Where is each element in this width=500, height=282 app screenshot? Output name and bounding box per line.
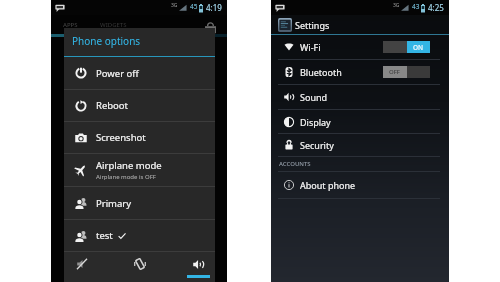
staticText: Wi-Fi [300, 41, 321, 53]
staticText: Reboot [96, 99, 129, 112]
staticText: Sound [300, 91, 328, 103]
button[interactable]: Security [271, 134, 449, 156]
staticText: Display [300, 116, 331, 128]
button[interactable]: Silent mode [70, 252, 93, 282]
staticText: ACCOUNTS [279, 160, 311, 168]
button[interactable]: Reboot [64, 90, 215, 121]
staticText: Settings [295, 19, 330, 31]
button[interactable]: Primary [64, 187, 215, 219]
staticText: OFF [389, 68, 401, 76]
staticText: Airplane mode is OFF [96, 173, 156, 181]
button[interactable]: test [64, 220, 215, 251]
button[interactable]: Display [271, 110, 449, 133]
staticText: Power off [96, 67, 139, 80]
staticText: 3G [393, 2, 400, 9]
button[interactable]: Vibrate mode [128, 252, 151, 282]
staticText: 4:19 [206, 2, 222, 13]
button[interactable]: Wi-Fi [271, 35, 449, 59]
button[interactable]: ON [383, 41, 430, 53]
staticText: Screenshot [96, 131, 146, 144]
staticText: ON [413, 43, 424, 52]
staticText: 3G [171, 2, 178, 9]
staticText: 4:25 [428, 2, 444, 13]
staticText: Bluetooth [300, 66, 342, 78]
button[interactable]: OFF [383, 66, 430, 78]
staticText: Phone options [72, 34, 141, 48]
staticText: Primary [96, 197, 132, 210]
button[interactable]: About phone [271, 172, 449, 198]
button[interactable]: Bluetooth [271, 60, 449, 84]
staticText: 43 [412, 2, 420, 11]
button[interactable]: Sound mode [187, 252, 210, 282]
button[interactable]: Power off [64, 57, 215, 89]
button[interactable]: Airplane mode [64, 154, 215, 186]
staticText: test [96, 229, 113, 242]
button[interactable]: Screenshot [64, 122, 215, 153]
staticText: About phone [300, 179, 356, 191]
staticText: 45 [190, 2, 198, 11]
staticText: APPS [63, 21, 78, 29]
staticText: Airplane mode [96, 159, 162, 172]
staticText: Security [300, 139, 334, 151]
staticText: WIDGETS [100, 21, 127, 29]
button[interactable]: Sound [271, 85, 449, 109]
